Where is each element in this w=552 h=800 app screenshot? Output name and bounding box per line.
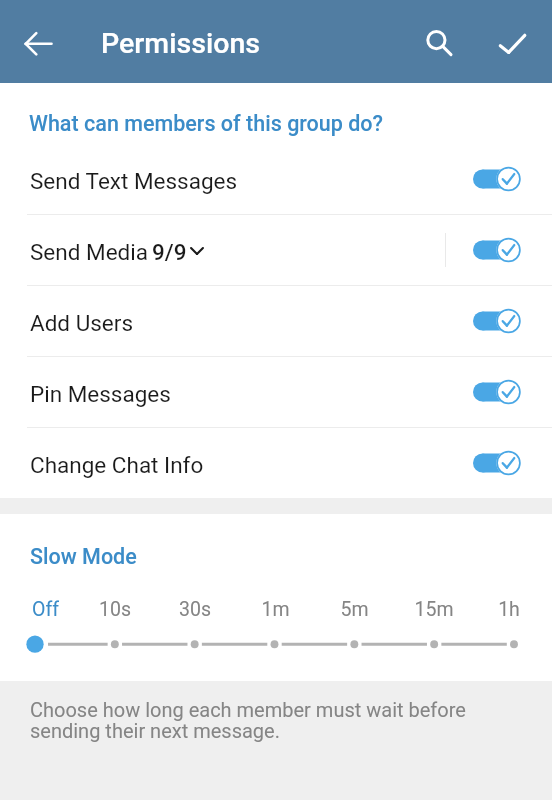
staticText: Off [32,598,59,621]
staticText: Slow Mode [30,544,137,569]
staticText: Pin Messages [30,381,171,407]
button[interactable]: 1m [235,594,315,624]
button[interactable]: Pin Messages [0,357,552,427]
staticText: Send Text Messages [30,168,238,194]
button[interactable]: Done [486,0,536,83]
staticText: Send Media [30,239,148,265]
staticText: 1h [498,598,520,621]
staticText: 15m [414,598,454,621]
button[interactable]: Send Media [0,215,552,285]
staticText: 10s [99,598,131,621]
staticText: 9/9 [152,239,187,265]
button[interactable]: 1h [440,594,520,624]
button[interactable]: Add Users [0,286,552,356]
staticText: 5m [340,598,369,621]
button[interactable]: Change Chat Info [0,428,552,498]
button[interactable]: 15m [394,594,474,624]
staticText: Permissions [101,27,261,60]
staticText: 1m [261,598,290,621]
button[interactable]: Search [412,0,462,83]
button[interactable]: Off [32,594,112,624]
button[interactable]: Back [0,0,63,83]
staticText: Add Users [30,310,134,336]
staticText: Choose how long each member must wait be… [30,698,466,743]
button[interactable]: 30s [155,594,235,624]
staticText: 30s [179,598,211,621]
staticText: What can members of this group do? [29,111,384,136]
button[interactable]: 10s [75,594,155,624]
staticText: Change Chat Info [30,452,204,478]
button[interactable]: 5m [314,594,394,624]
button[interactable]: Send Text Messages [0,144,552,214]
